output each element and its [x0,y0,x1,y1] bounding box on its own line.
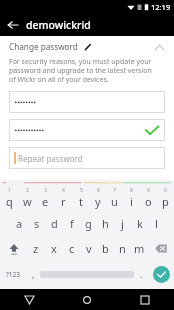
button[interactable] [9,91,165,113]
button[interactable]: Change password [0,36,174,57]
button[interactable]: n [114,236,131,261]
staticText: 7 [113,187,116,194]
staticText: i [130,194,133,209]
button[interactable]: h [97,211,114,236]
button[interactable]: Collapse section [150,38,168,56]
staticText: s [34,216,40,231]
button[interactable]: k [131,211,148,236]
button[interactable]: Done [153,266,170,283]
other: Edit [83,42,93,52]
button[interactable]: Repeat password [9,147,165,169]
staticText: l [155,216,158,231]
button[interactable]: a [10,211,28,236]
button[interactable]: d [46,211,63,236]
staticText: 8 [130,187,133,194]
button[interactable]: 2 [18,185,36,211]
button[interactable]: j [114,211,131,236]
staticText: e [42,194,49,209]
staticText: 1 [8,187,11,194]
staticText: 2 [26,187,29,194]
staticText: x [51,241,57,256]
button[interactable]: Delete [148,236,174,261]
button[interactable]: Back [0,289,58,310]
button[interactable]: 0 [157,185,174,211]
button[interactable]: Home [58,289,116,310]
button[interactable]: 6 [89,185,106,211]
button[interactable]: 4 [54,185,72,211]
staticText: o [145,194,152,209]
staticText: c [69,241,75,256]
staticText: g [85,216,92,231]
button[interactable]: z [27,236,45,261]
staticText: Repeat password [18,153,83,164]
staticText: . [140,268,143,280]
staticText: 6 [97,187,100,194]
button[interactable]: g [80,211,97,236]
button[interactable]: 3 [36,185,54,211]
staticText: z [33,241,39,256]
button[interactable]: Shift [0,236,27,261]
staticText: , [32,268,35,280]
staticText: m [134,241,145,256]
button[interactable]: b [97,236,114,261]
staticText: 9 [147,187,150,194]
button[interactable]: l [148,211,165,236]
staticText: k [137,216,143,231]
staticText: n [119,241,126,256]
staticText: For security reasons, you must update yo… [9,57,160,84]
staticText: u [111,194,118,209]
staticText: r [61,194,66,209]
button[interactable]: 5 [72,185,89,211]
button[interactable]: . [134,261,148,287]
staticText: b [102,241,109,256]
staticText: 3 [44,187,47,194]
staticText: h [102,216,109,231]
staticText: ?123 [6,270,20,279]
button[interactable]: v [80,236,97,261]
staticText: j [121,216,124,231]
staticText: d [51,216,58,231]
button[interactable]: Recents [116,289,174,310]
staticText: w [23,194,32,209]
staticText: p [162,194,169,209]
staticText: q [6,194,13,209]
button[interactable]: s [28,211,46,236]
button[interactable]: c [63,236,80,261]
button[interactable]: x [45,236,63,261]
staticText: v [86,241,92,256]
button[interactable] [9,119,165,141]
button[interactable]: m [131,236,148,261]
button[interactable]: ?123 [0,261,26,287]
button[interactable]: 1 [0,185,18,211]
staticText: f [70,216,74,231]
staticText: 0 [164,187,167,194]
button[interactable]: , [26,261,40,287]
staticText: Change password [9,41,78,52]
staticText: 12:19 [151,2,171,12]
staticText: 5 [80,187,83,194]
button[interactable]: 9 [140,185,157,211]
button[interactable]: 8 [123,185,140,211]
button[interactable]: f [63,211,80,236]
staticText: demowickrid [26,18,91,32]
button[interactable]: Navigate up [0,13,26,36]
staticText: y [95,194,101,209]
staticText: a [16,216,23,231]
button[interactable]: 7 [106,185,123,211]
staticText: 4 [62,187,65,194]
staticText: t [79,194,83,209]
